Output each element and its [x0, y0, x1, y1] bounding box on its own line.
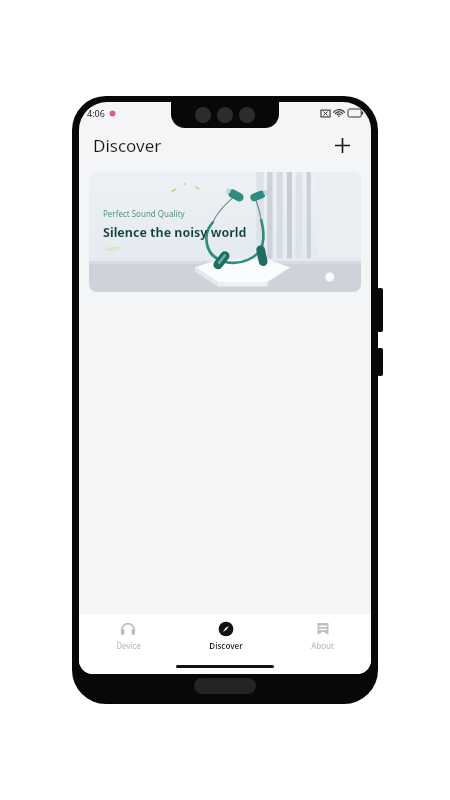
- staticText: Discover: [93, 134, 162, 157]
- staticText: Perfect Sound Quality: [103, 208, 185, 219]
- staticText: Silence the noisy world: [103, 224, 247, 241]
- button[interactable]: Perfect Sound Quality: [89, 172, 361, 292]
- button[interactable]: Add: [327, 130, 357, 160]
- button[interactable]: Discover: [177, 614, 274, 658]
- staticText: About: [311, 640, 334, 651]
- button[interactable]: Device: [79, 614, 177, 658]
- staticText: Discover: [209, 640, 243, 651]
- staticText: 4:06: [87, 107, 105, 119]
- staticText: Device: [116, 640, 141, 651]
- button[interactable]: About: [274, 614, 371, 658]
